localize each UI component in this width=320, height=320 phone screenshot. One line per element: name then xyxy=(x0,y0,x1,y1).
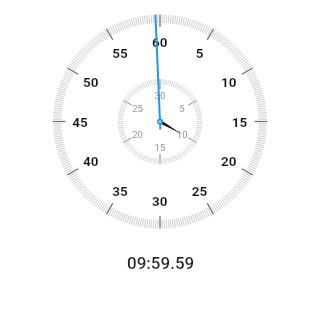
button[interactable] xyxy=(0,0,320,320)
